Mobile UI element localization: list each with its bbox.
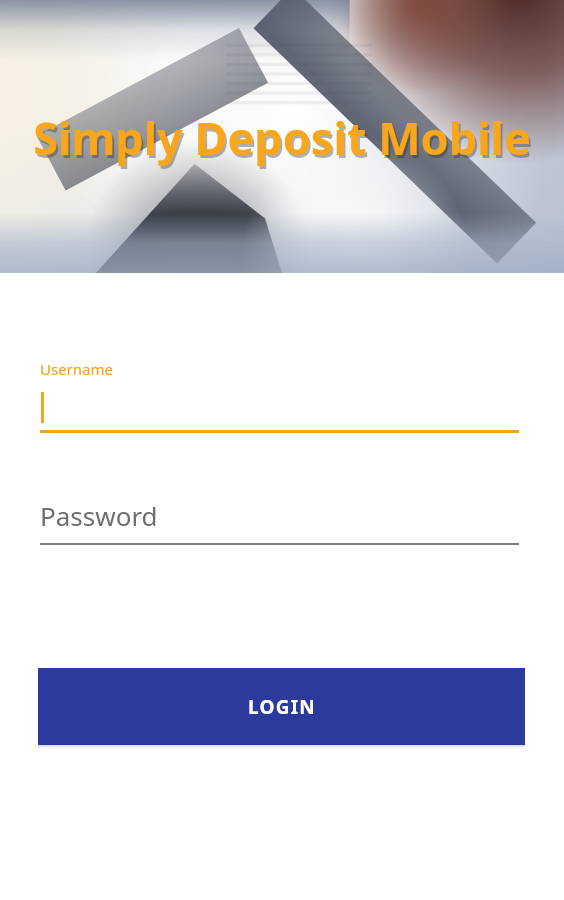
button[interactable]: LOGIN bbox=[38, 668, 525, 745]
staticText: Simply Deposit Mobile bbox=[2, 110, 564, 171]
button[interactable]: Password input bbox=[40, 497, 519, 545]
button[interactable]: Username input bbox=[40, 385, 519, 433]
staticText: Username bbox=[40, 359, 113, 379]
staticText: Simply Deposit Mobile bbox=[0, 107, 564, 168]
staticText: LOGIN bbox=[248, 694, 316, 720]
staticText: Password bbox=[40, 498, 158, 533]
